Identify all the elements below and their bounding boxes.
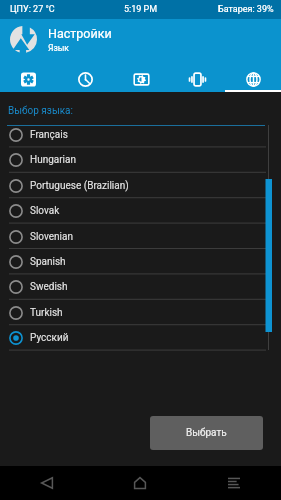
button[interactable]: Swedish bbox=[0, 274, 281, 299]
staticText: Slovak bbox=[30, 205, 60, 217]
staticText: Настройки bbox=[48, 26, 112, 41]
button[interactable]: Slovenian bbox=[0, 224, 281, 249]
button[interactable]: Back bbox=[0, 466, 93, 500]
button[interactable]: Menu bbox=[187, 466, 281, 500]
staticText: Spanish bbox=[30, 256, 66, 268]
button[interactable]: Выбрать bbox=[150, 416, 263, 450]
staticText: Выбор языка: bbox=[8, 105, 73, 117]
staticText: Выбрать bbox=[186, 427, 227, 439]
staticText: Slovenian bbox=[30, 231, 73, 243]
staticText: Portuguese (Brazilian) bbox=[30, 180, 129, 192]
staticText: Turkish bbox=[30, 307, 63, 319]
button[interactable]: Settings bbox=[0, 60, 57, 92]
button[interactable]: Language bbox=[225, 60, 281, 92]
button[interactable]: Turkish bbox=[0, 300, 281, 325]
staticText: Français bbox=[30, 129, 68, 141]
button[interactable]: Français bbox=[0, 122, 281, 147]
staticText: Swedish bbox=[30, 281, 68, 293]
button[interactable]: Slovak bbox=[0, 198, 281, 223]
button[interactable]: Home bbox=[93, 466, 187, 500]
button[interactable]: Vibration bbox=[169, 60, 225, 92]
staticText: ЦПУ: 27 °C bbox=[10, 4, 55, 15]
button[interactable]: Русский bbox=[0, 325, 281, 350]
button[interactable]: Spanish bbox=[0, 249, 281, 274]
staticText: 5:19 PM bbox=[124, 4, 158, 15]
staticText: Язык bbox=[48, 43, 69, 53]
button[interactable]: Portuguese (Brazilian) bbox=[0, 173, 281, 198]
button[interactable]: Time bbox=[57, 60, 113, 92]
staticText: Батарея: 39% bbox=[218, 4, 274, 15]
button[interactable]: Hungarian bbox=[0, 147, 281, 172]
button[interactable]: Screen brightness bbox=[113, 60, 169, 92]
staticText: Hungarian bbox=[30, 154, 77, 166]
staticText: Русский bbox=[30, 332, 69, 344]
